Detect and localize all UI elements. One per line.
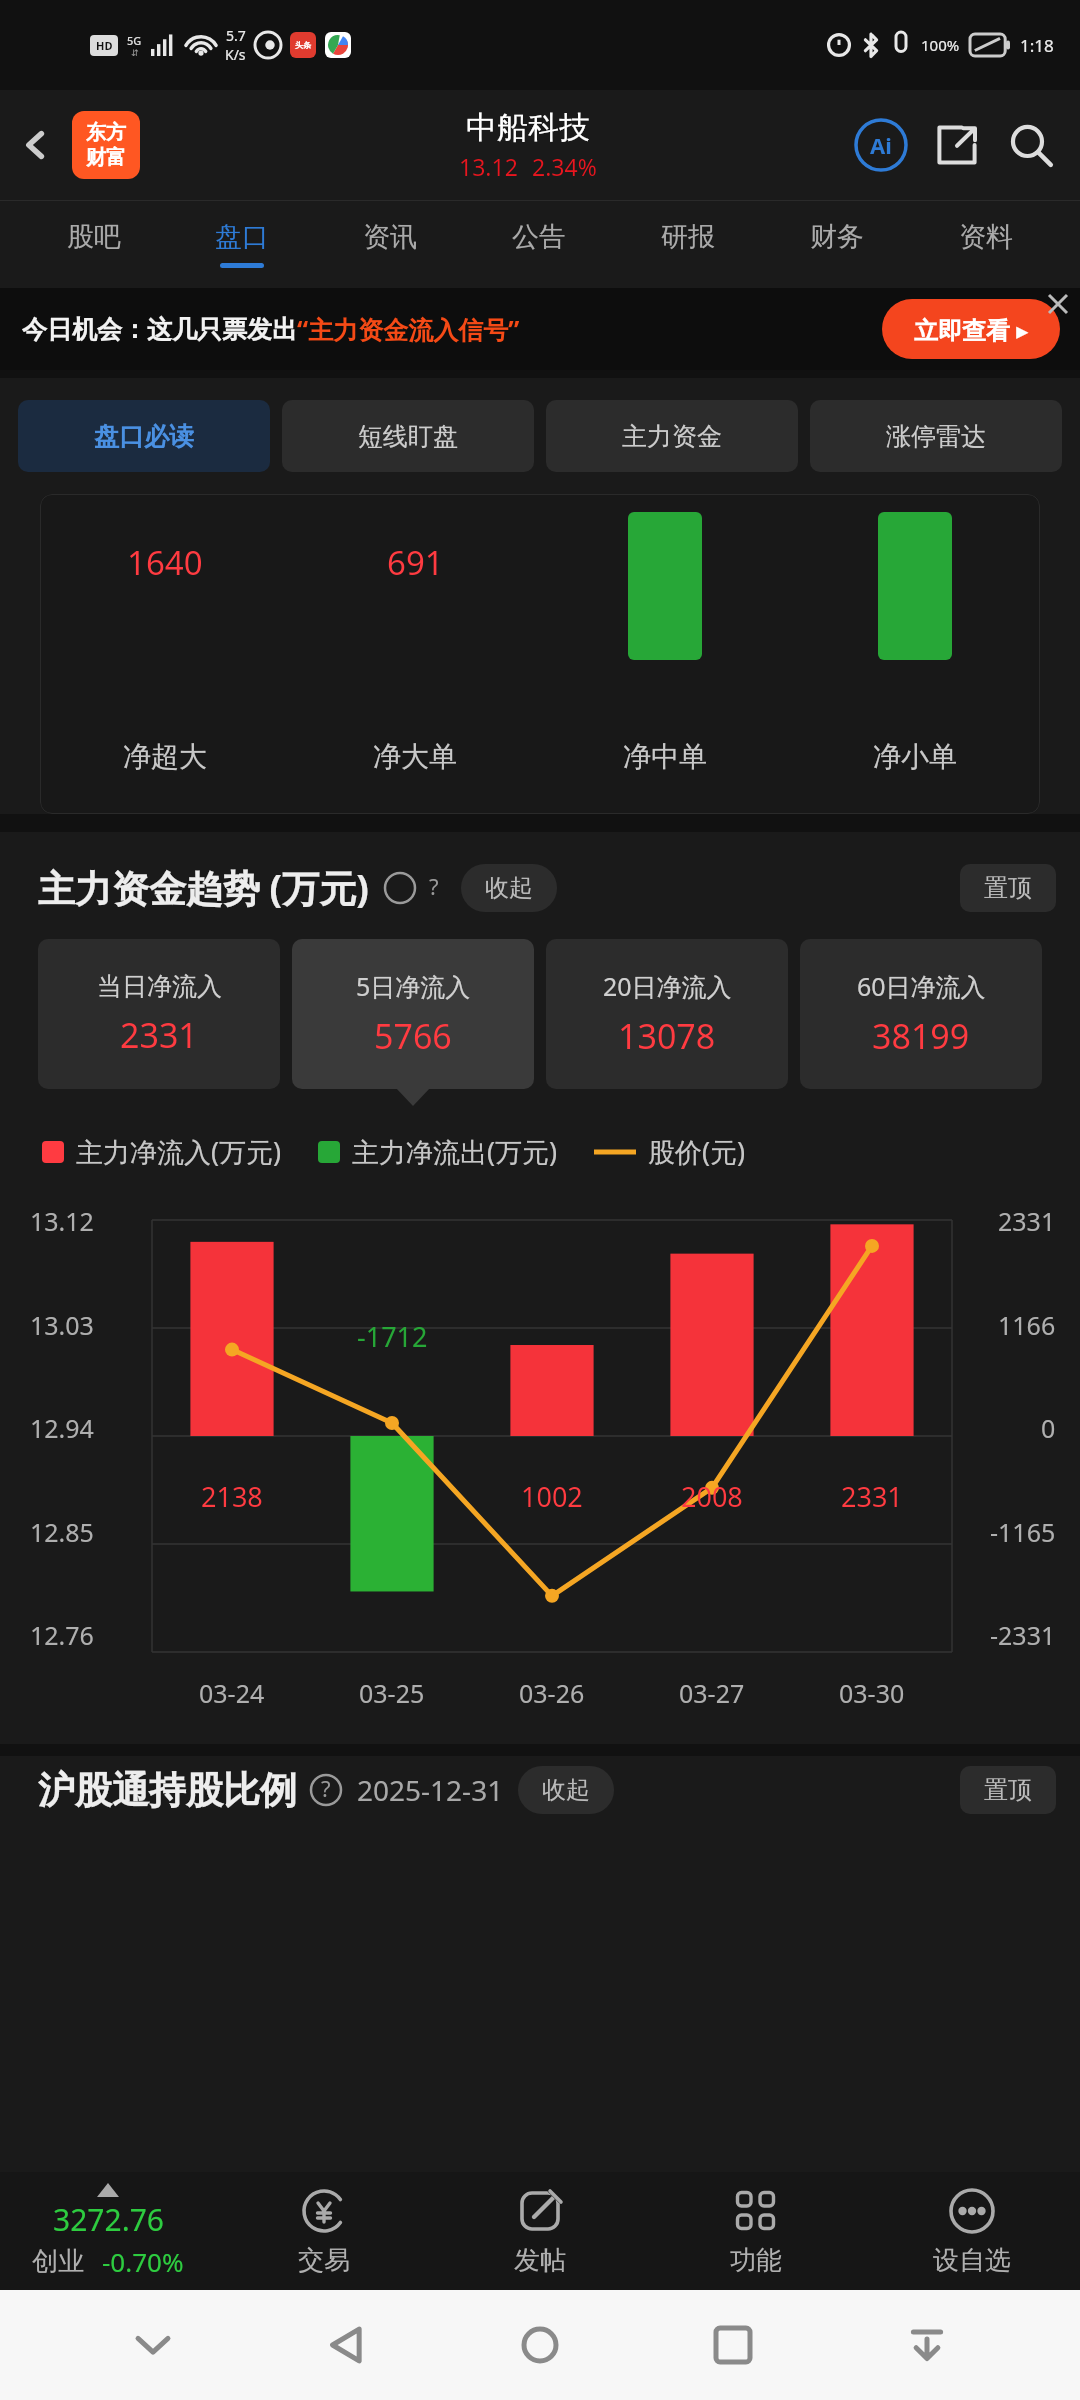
button[interactable]: 当日净流入: [38, 939, 280, 1089]
button[interactable]: Recents: [693, 2305, 773, 2385]
staticText: 0: [1041, 1411, 1056, 1445]
staticText: 净大单: [373, 739, 457, 774]
staticText: 2331: [998, 1204, 1056, 1238]
button[interactable]: Close: [1044, 290, 1072, 318]
staticText: 公告: [512, 220, 566, 254]
staticText: 置顶: [984, 1775, 1032, 1805]
staticText: 东方: [86, 120, 126, 145]
button[interactable]: Back: [307, 2305, 387, 2385]
staticText: 691: [387, 540, 444, 585]
button[interactable]: 涨停雷达: [810, 400, 1062, 472]
button[interactable]: 盘口必读: [18, 400, 270, 472]
staticText: 1640: [127, 540, 203, 585]
button[interactable]: 资讯: [316, 200, 464, 288]
staticText: 研报: [661, 220, 715, 254]
button[interactable]: 5日净流入: [292, 939, 534, 1089]
button[interactable]: Back: [0, 109, 72, 181]
staticText: 头条: [295, 40, 311, 50]
button[interactable]: Search: [1004, 118, 1058, 172]
staticText: 股吧: [67, 220, 121, 254]
staticText: 5.7: [226, 26, 246, 45]
staticText: 盘口: [215, 220, 269, 254]
button[interactable]: 20日净流入: [546, 939, 788, 1089]
staticText: 短线盯盘: [358, 421, 458, 452]
staticText: 12.94: [30, 1411, 94, 1445]
staticText: 发帖: [514, 2244, 566, 2277]
staticText: 涨停雷达: [886, 421, 986, 452]
button[interactable]: 公告: [464, 200, 613, 288]
staticText: 13.12: [459, 151, 518, 182]
button[interactable]: Share: [930, 118, 984, 172]
button[interactable]: 设自选: [864, 2172, 1080, 2290]
staticText: 5日净流入: [356, 969, 471, 1003]
staticText: 资讯: [363, 220, 417, 254]
staticText: 60日净流入: [857, 969, 986, 1003]
button[interactable]: 短线盯盘: [282, 400, 534, 472]
staticText: 净中单: [623, 739, 707, 774]
staticText: 主力净流入(万元): [76, 1133, 282, 1170]
staticText: 这几只票发出: [147, 314, 297, 345]
button[interactable]: 3272.76: [0, 2172, 216, 2290]
button[interactable]: 置顶: [960, 864, 1056, 912]
staticText: 交易: [298, 2244, 350, 2277]
button[interactable]: 功能: [648, 2172, 864, 2290]
staticText: 38199: [872, 1013, 970, 1059]
staticText: 20日净流入: [603, 969, 732, 1003]
staticText: 5766: [374, 1013, 452, 1059]
button[interactable]: 盘口: [168, 200, 316, 288]
staticText: 03-30: [839, 1676, 905, 1710]
staticText: -1712: [357, 1318, 428, 1355]
staticText: ?: [321, 1773, 331, 1803]
staticText: “主力资金流入信号”: [297, 312, 520, 346]
staticText: 03-24: [199, 1676, 265, 1710]
button[interactable]: 主力资金: [546, 400, 798, 472]
staticText: -2331: [990, 1618, 1056, 1652]
button[interactable]: Hide keyboard: [113, 2305, 193, 2385]
staticText: 2025-12-31: [357, 1771, 504, 1809]
staticText: 净小单: [873, 739, 957, 774]
button[interactable]: Download: [887, 2305, 967, 2385]
staticText: HD: [96, 38, 113, 53]
staticText: 12.76: [30, 1618, 94, 1652]
staticText: 资料: [959, 220, 1013, 254]
staticText: 股价(元): [648, 1133, 746, 1170]
button[interactable]: 股吧: [20, 200, 168, 288]
staticText: 中船科技: [466, 108, 590, 147]
staticText: 主力资金趋势 (万元): [38, 862, 369, 913]
staticText: 功能: [730, 2244, 782, 2277]
staticText: 03-26: [519, 1676, 585, 1710]
staticText: 2.34%: [532, 151, 597, 182]
staticText: 3272.76: [53, 2199, 164, 2240]
button[interactable]: 研报: [613, 200, 762, 288]
staticText: 收起: [542, 1775, 590, 1805]
staticText: 03-27: [679, 1676, 745, 1710]
staticText: 13078: [618, 1013, 716, 1059]
staticText: 12.85: [30, 1515, 94, 1549]
staticText: ⇵: [131, 48, 139, 58]
button[interactable]: 资料: [911, 200, 1060, 288]
staticText: 财务: [810, 220, 864, 254]
button[interactable]: AI: [852, 116, 910, 174]
button[interactable]: 60日净流入: [800, 939, 1042, 1089]
staticText: 沪股通持股比例: [38, 1767, 297, 1814]
staticText: -1165: [990, 1515, 1056, 1549]
staticText: 13.03: [30, 1308, 94, 1342]
staticText: 收起: [485, 873, 533, 903]
button[interactable]: 东方: [72, 111, 140, 179]
staticText: 100%: [921, 35, 960, 55]
button[interactable]: 收起: [518, 1766, 614, 1814]
button[interactable]: 立即查看 ▸: [882, 299, 1060, 359]
staticText: 立即查看 ▸: [914, 313, 1029, 346]
staticText: -0.70%: [102, 2244, 184, 2279]
staticText: 1:18: [1020, 34, 1054, 57]
staticText: Ai: [870, 130, 892, 160]
button[interactable]: 收起: [461, 864, 557, 912]
button[interactable]: 财务: [762, 200, 911, 288]
staticText: 2138: [201, 1478, 263, 1515]
staticText: 5G: [127, 33, 142, 48]
button[interactable]: Home: [500, 2305, 580, 2385]
button[interactable]: 发帖: [432, 2172, 648, 2290]
button[interactable]: 交易: [216, 2172, 432, 2290]
button[interactable]: 置顶: [960, 1766, 1056, 1814]
staticText: 当日净流入: [97, 971, 222, 1002]
